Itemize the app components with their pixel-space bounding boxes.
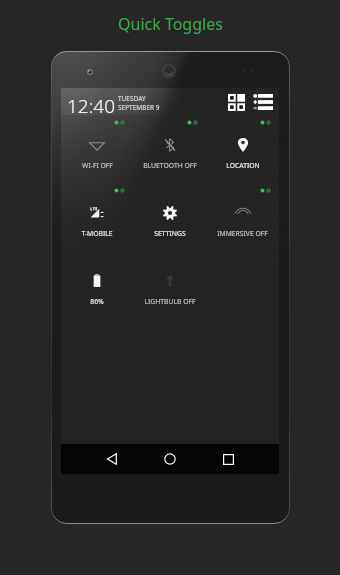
button[interactable]: Recent apps bbox=[206, 444, 250, 474]
button[interactable]: LIGHTBULB OFF bbox=[133, 251, 206, 319]
staticText: BLUETOOTH OFF bbox=[143, 161, 197, 170]
staticText: Quick Toggles bbox=[118, 13, 223, 35]
staticText: LIGHTBULB OFF bbox=[144, 297, 196, 306]
staticText: IMMERSIVE OFF bbox=[217, 229, 268, 238]
button[interactable]: 86% bbox=[61, 251, 133, 319]
staticText: T-MOBILE bbox=[81, 229, 113, 238]
button[interactable]: List view bbox=[250, 89, 276, 115]
staticText: LOCATION bbox=[226, 161, 260, 170]
staticText: 86% bbox=[90, 297, 104, 306]
button[interactable]: Grid view bbox=[224, 90, 248, 114]
staticText: WI-FI OFF bbox=[82, 161, 113, 170]
staticText: 12:40 bbox=[67, 93, 116, 119]
button[interactable]: WI-FI OFF bbox=[61, 115, 133, 183]
staticText: SETTINGS bbox=[154, 229, 186, 238]
button[interactable]: IMMERSIVE OFF bbox=[206, 183, 279, 251]
button[interactable]: Back bbox=[90, 444, 134, 474]
button[interactable]: BLUETOOTH OFF bbox=[133, 115, 206, 183]
staticText: SEPTEMBER 9 bbox=[118, 103, 160, 112]
staticText: TUESDAY bbox=[118, 94, 146, 103]
button[interactable]: SETTINGS bbox=[133, 183, 206, 251]
button[interactable]: T-MOBILE bbox=[61, 183, 133, 251]
button[interactable]: Home bbox=[148, 444, 192, 474]
button[interactable]: LOCATION bbox=[206, 115, 279, 183]
